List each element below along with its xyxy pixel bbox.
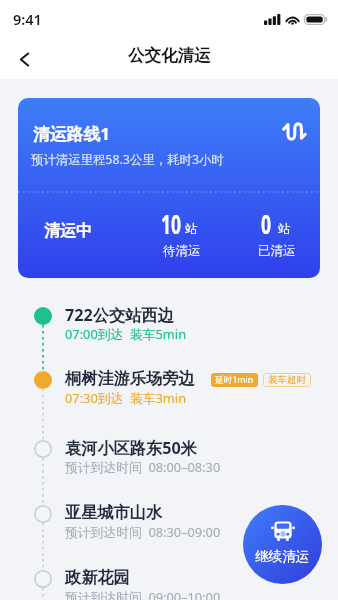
staticText: 装车超时 (268, 374, 306, 386)
button[interactable]: 政新花园 (0, 557, 338, 600)
staticText: 袁河小区路东50米 (65, 437, 197, 459)
button[interactable]: 桐树洼游乐场旁边 (0, 358, 338, 427)
staticText: 继续清运 (255, 548, 310, 565)
staticText: 9:41 (13, 9, 42, 29)
staticText: 政新花园 (65, 567, 130, 587)
button[interactable]: 继续清运 (243, 505, 322, 584)
button[interactable]: 延时1min (215, 373, 254, 387)
button[interactable]: 722公交站西边 (0, 294, 338, 358)
staticText: 已清运 (258, 243, 296, 259)
staticText: 公交化清运 (128, 45, 211, 66)
staticText: 预计清运里程58.3公里，耗时3小时 (31, 151, 224, 168)
staticText: 预计到达时间 08:30–09:00 (65, 523, 221, 540)
staticText: 亚星城市山水 (65, 502, 163, 522)
staticText: 0 (261, 206, 271, 241)
button[interactable]: 袁河小区路东50米 (0, 427, 338, 492)
button[interactable]: 装车超时 (268, 373, 306, 387)
button[interactable]: 亚星城市山水 (0, 492, 338, 557)
staticText: 桐树洼游乐场旁边 (65, 368, 195, 388)
staticText: 10 (161, 206, 181, 241)
staticText: 清运路线1 (33, 122, 110, 145)
staticText: 清运中 (44, 221, 92, 241)
staticText: 待清运 (163, 243, 201, 259)
staticText: 07:30到达 装车3min (65, 389, 187, 406)
staticText: 站 (185, 221, 198, 237)
staticText: 07:00到达 装车5min (65, 325, 187, 342)
button[interactable]: Back (6, 41, 42, 77)
staticText: 预计到达时间 09:00–10:00 (65, 588, 221, 600)
staticText: 站 (278, 221, 291, 237)
staticText: 预计到达时间 08:00–08:30 (65, 458, 221, 475)
staticText: 延时1min (215, 374, 254, 386)
staticText: 722公交站西边 (65, 304, 174, 326)
button[interactable]: 清运路线1 (18, 98, 320, 278)
